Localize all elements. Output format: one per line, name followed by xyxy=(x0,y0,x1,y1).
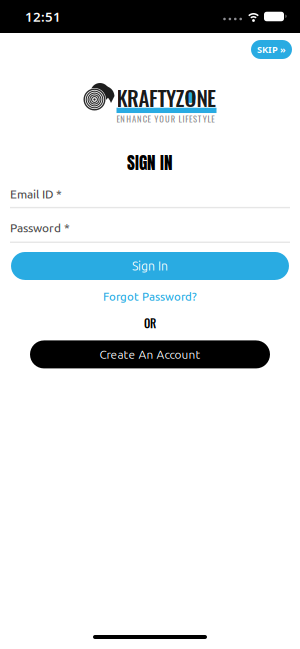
staticText: Sign In xyxy=(132,259,168,273)
staticText: 12:51 xyxy=(25,8,61,25)
staticText: ENHANCE YOUR LIFESTYLE xyxy=(116,112,214,125)
button[interactable]: Create An Account xyxy=(30,340,270,368)
button[interactable]: Password xyxy=(10,221,290,243)
staticText: O xyxy=(184,82,196,113)
staticText: Email ID * xyxy=(10,188,62,201)
staticText: Create An Account xyxy=(99,348,200,361)
staticText: Password * xyxy=(10,221,70,235)
staticText: KRAFTYZ xyxy=(116,82,184,113)
button[interactable]: Forgot Password? xyxy=(103,290,197,303)
button[interactable]: Email ID xyxy=(10,188,290,208)
staticText: OR xyxy=(144,315,156,331)
staticText: Forgot Password? xyxy=(103,290,197,303)
staticText: SKIP » xyxy=(257,43,286,56)
button[interactable]: Sign In xyxy=(11,252,289,280)
staticText: SIGN IN xyxy=(127,150,173,176)
button[interactable]: SKIP » xyxy=(251,40,292,59)
staticText: NE xyxy=(196,82,216,113)
